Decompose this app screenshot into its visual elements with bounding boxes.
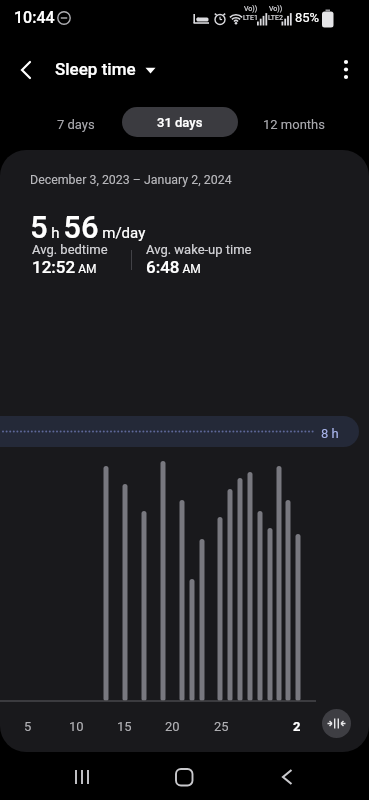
staticText: 5 h 56 m/day (30, 209, 146, 245)
staticText: 31 days (157, 115, 203, 130)
button[interactable] (8, 52, 44, 88)
button[interactable]: 31 days (122, 107, 238, 137)
staticText: December 3, 2023 – January 2, 2024 (30, 172, 232, 187)
staticText: LTE2 (268, 14, 283, 22)
staticText: LTE1 (243, 14, 258, 22)
button[interactable] (62, 757, 102, 797)
staticText: 12 months (263, 117, 325, 132)
button[interactable] (329, 52, 363, 86)
staticText: 25 (214, 719, 229, 734)
staticText: 10:44 (14, 8, 55, 27)
staticText: 5 (24, 719, 32, 734)
staticText: 20 (165, 719, 180, 734)
staticText: 10 (69, 719, 84, 734)
button[interactable]: 12 months (250, 108, 338, 140)
staticText: 6:48 AM (146, 257, 201, 277)
staticText: Vo)) (269, 5, 283, 13)
button[interactable]: 7 days (40, 108, 112, 140)
staticText: 15 (117, 719, 132, 734)
staticText: 85% (295, 10, 320, 25)
staticText: 8 h (321, 426, 339, 441)
staticText: 7 days (57, 117, 95, 132)
staticText: Avg. wake-up time (146, 242, 252, 257)
staticText: Vo)) (244, 5, 258, 13)
staticText: Avg. bedtime (32, 242, 108, 257)
button[interactable]: Sleep time (55, 59, 167, 85)
staticText: Sleep time (55, 59, 136, 79)
staticText: 12:52 AM (32, 257, 97, 277)
staticText: 2 (293, 719, 301, 734)
button[interactable] (164, 757, 204, 797)
button[interactable] (267, 757, 307, 797)
button[interactable] (322, 709, 351, 738)
